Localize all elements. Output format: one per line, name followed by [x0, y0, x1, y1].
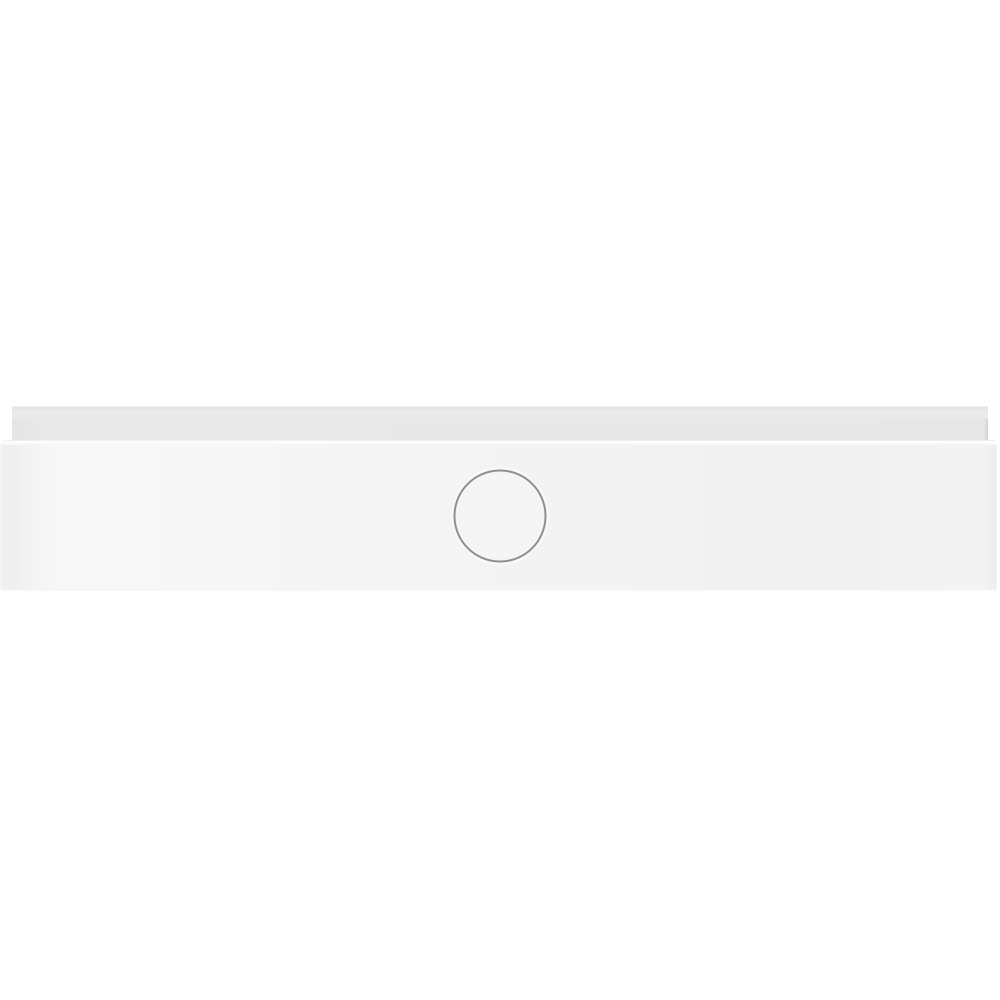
button[interactable]: Power indicator [450, 466, 550, 566]
